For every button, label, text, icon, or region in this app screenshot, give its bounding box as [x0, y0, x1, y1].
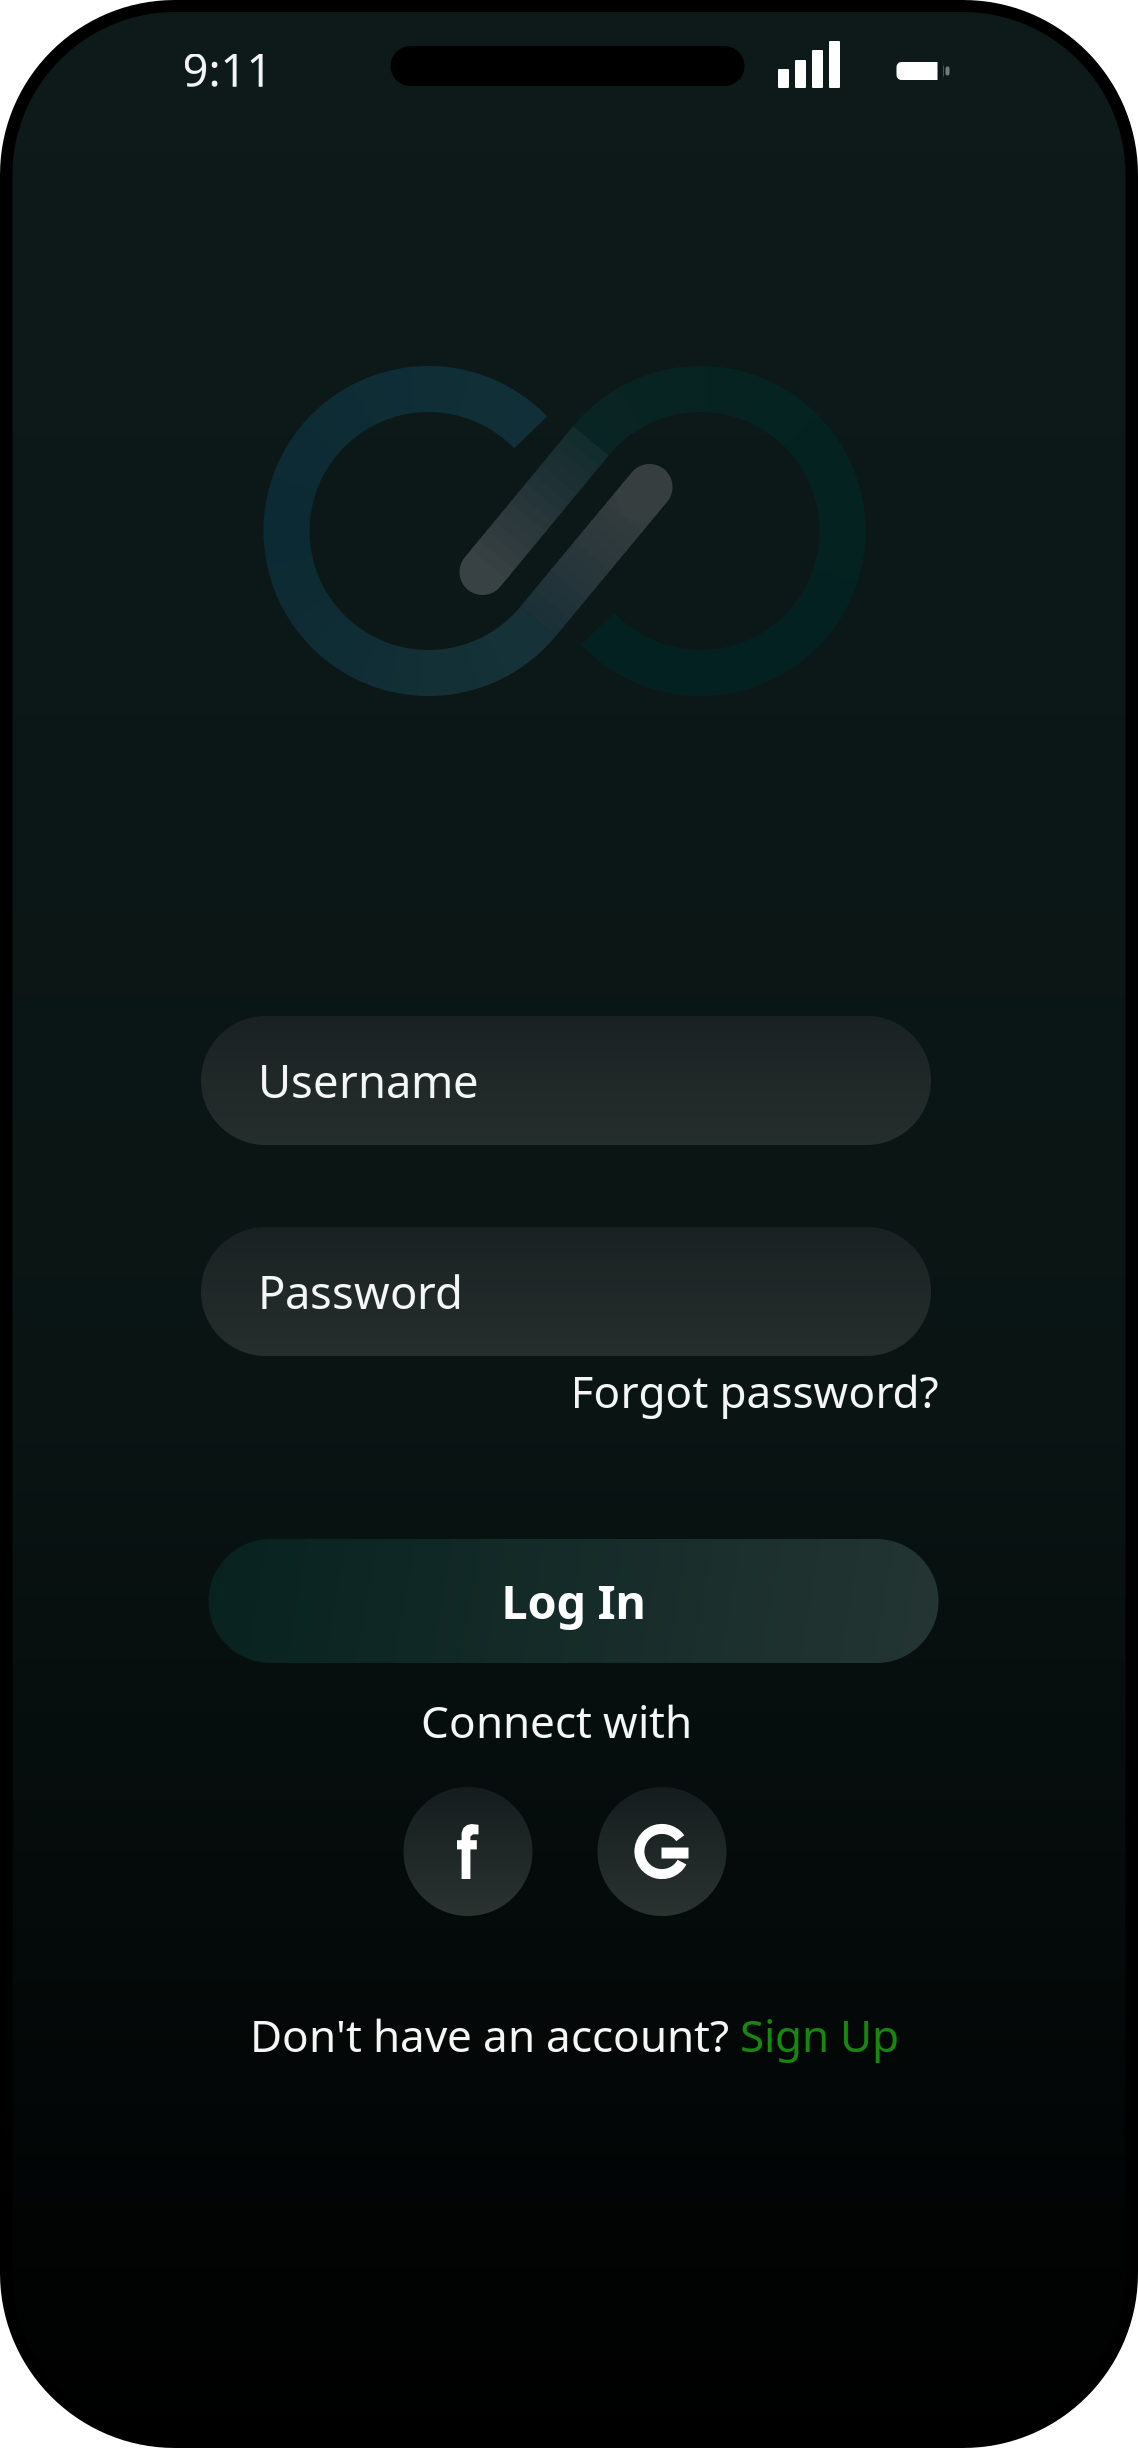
staticText: Password: [258, 1261, 463, 1322]
button[interactable]: Forgot password?: [568, 1368, 938, 1414]
button[interactable]: Continue with Google: [597, 1787, 726, 1916]
button[interactable]: Don't have an account?: [224, 2012, 924, 2058]
staticText: Don't have an account?: [250, 2006, 740, 2064]
staticText: Log In: [501, 1570, 645, 1632]
staticText: Connect with: [421, 1692, 692, 1750]
button[interactable]: Password: [201, 1227, 931, 1356]
button[interactable]: Username: [201, 1016, 931, 1145]
staticText: Sign Up: [740, 2006, 899, 2064]
button[interactable]: Continue with Facebook: [403, 1787, 532, 1916]
staticText: Username: [258, 1050, 479, 1111]
staticText: Forgot password?: [570, 1362, 938, 1420]
button[interactable]: Log In: [208, 1539, 938, 1663]
staticText: 9:11: [182, 39, 272, 99]
